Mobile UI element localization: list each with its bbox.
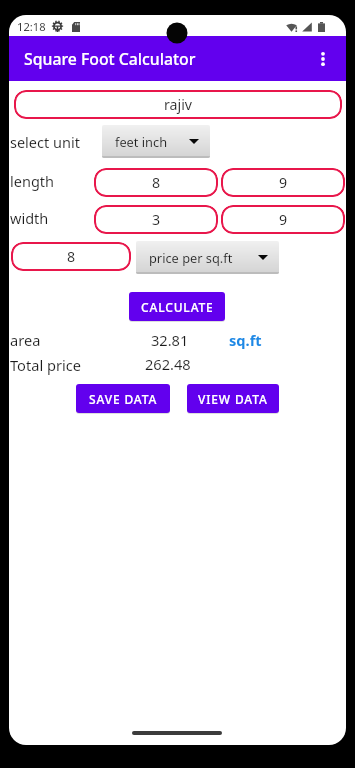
button[interactable]: SAVE DATA xyxy=(76,384,170,413)
button[interactable]: 3 xyxy=(94,205,218,234)
staticText: feet inch xyxy=(115,133,168,150)
staticText: 262.48 xyxy=(145,354,191,374)
staticText: rajiv xyxy=(164,95,193,114)
button[interactable]: rajiv xyxy=(14,90,342,119)
staticText: 9 xyxy=(279,210,288,229)
staticText: 12:18 xyxy=(17,19,46,34)
button[interactable]: More options xyxy=(306,42,340,76)
staticText: 9 xyxy=(279,173,288,192)
button[interactable]: 8 xyxy=(11,242,131,271)
staticText: width xyxy=(10,208,49,228)
staticText: length xyxy=(10,171,54,191)
staticText: VIEW DATA xyxy=(198,391,268,407)
staticText: 8 xyxy=(67,247,76,266)
staticText: 32.81 xyxy=(151,330,189,350)
staticText: Total price xyxy=(10,355,81,375)
button[interactable]: 9 xyxy=(221,205,345,234)
button[interactable]: price per sq.ft xyxy=(136,241,279,274)
staticText: price per sq.ft xyxy=(149,249,233,266)
staticText: select unit xyxy=(10,132,80,152)
staticText: area xyxy=(10,330,41,350)
button[interactable]: VIEW DATA xyxy=(187,384,279,413)
button[interactable]: 8 xyxy=(94,168,218,197)
button[interactable]: CALCULATE xyxy=(129,292,225,321)
staticText: CALCULATE xyxy=(141,299,214,315)
button[interactable]: 9 xyxy=(221,168,345,197)
staticText: 3 xyxy=(152,210,161,229)
staticText: Square Foot Calculator xyxy=(24,48,196,70)
staticText: sq.ft xyxy=(229,330,262,350)
staticText: SAVE DATA xyxy=(89,391,158,407)
staticText: 8 xyxy=(152,173,161,192)
button[interactable]: feet inch xyxy=(102,125,210,158)
